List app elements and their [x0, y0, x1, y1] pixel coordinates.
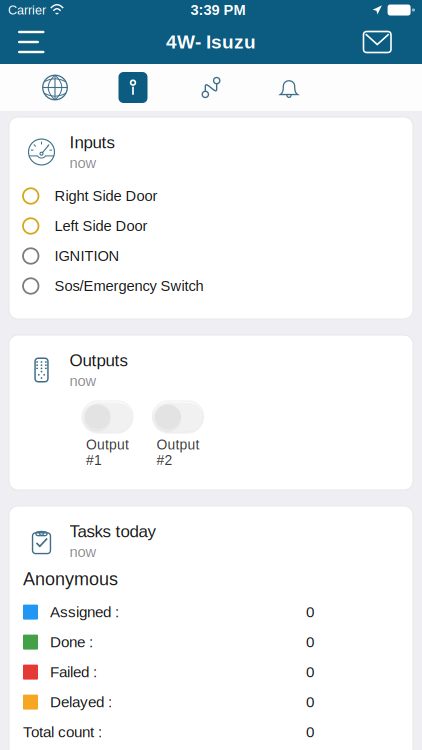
staticText: Output #2: [156, 437, 199, 468]
staticText: 0: [306, 634, 314, 651]
staticText: 4W- Isuzu: [166, 31, 256, 53]
staticText: 3:39 PM: [191, 2, 246, 18]
staticText: 0: [306, 664, 314, 681]
staticText: IGNITION: [54, 248, 119, 264]
staticText: Done :: [50, 634, 93, 651]
staticText: Sos/Emergency Switch: [54, 278, 203, 294]
staticText: now: [69, 544, 96, 560]
staticText: Left Side Door: [54, 218, 147, 234]
staticText: Inputs: [69, 133, 114, 152]
staticText: now: [69, 155, 96, 171]
button[interactable]: Information: [94, 64, 172, 111]
staticText: 0: [306, 724, 314, 741]
button[interactable]: Messages: [343, 20, 395, 64]
staticText: Tasks today: [69, 522, 155, 541]
button[interactable]: Menu: [8, 20, 63, 64]
staticText: now: [69, 373, 96, 389]
staticText: Outputs: [69, 351, 127, 370]
staticText: 0: [306, 694, 314, 711]
button[interactable]: Trips: [172, 64, 250, 111]
staticText: Delayed :: [50, 694, 112, 711]
staticText: Assigned :: [50, 604, 119, 621]
staticText: Right Side Door: [54, 188, 157, 204]
staticText: 0: [306, 604, 314, 621]
staticText: Anonymous: [23, 569, 118, 589]
button[interactable]: Map: [16, 64, 94, 111]
staticText: Carrier: [8, 3, 46, 17]
staticText: Failed :: [50, 664, 97, 681]
staticText: Total count :: [23, 724, 102, 741]
staticText: Output #1: [86, 437, 129, 468]
button[interactable]: Alerts: [250, 64, 328, 111]
